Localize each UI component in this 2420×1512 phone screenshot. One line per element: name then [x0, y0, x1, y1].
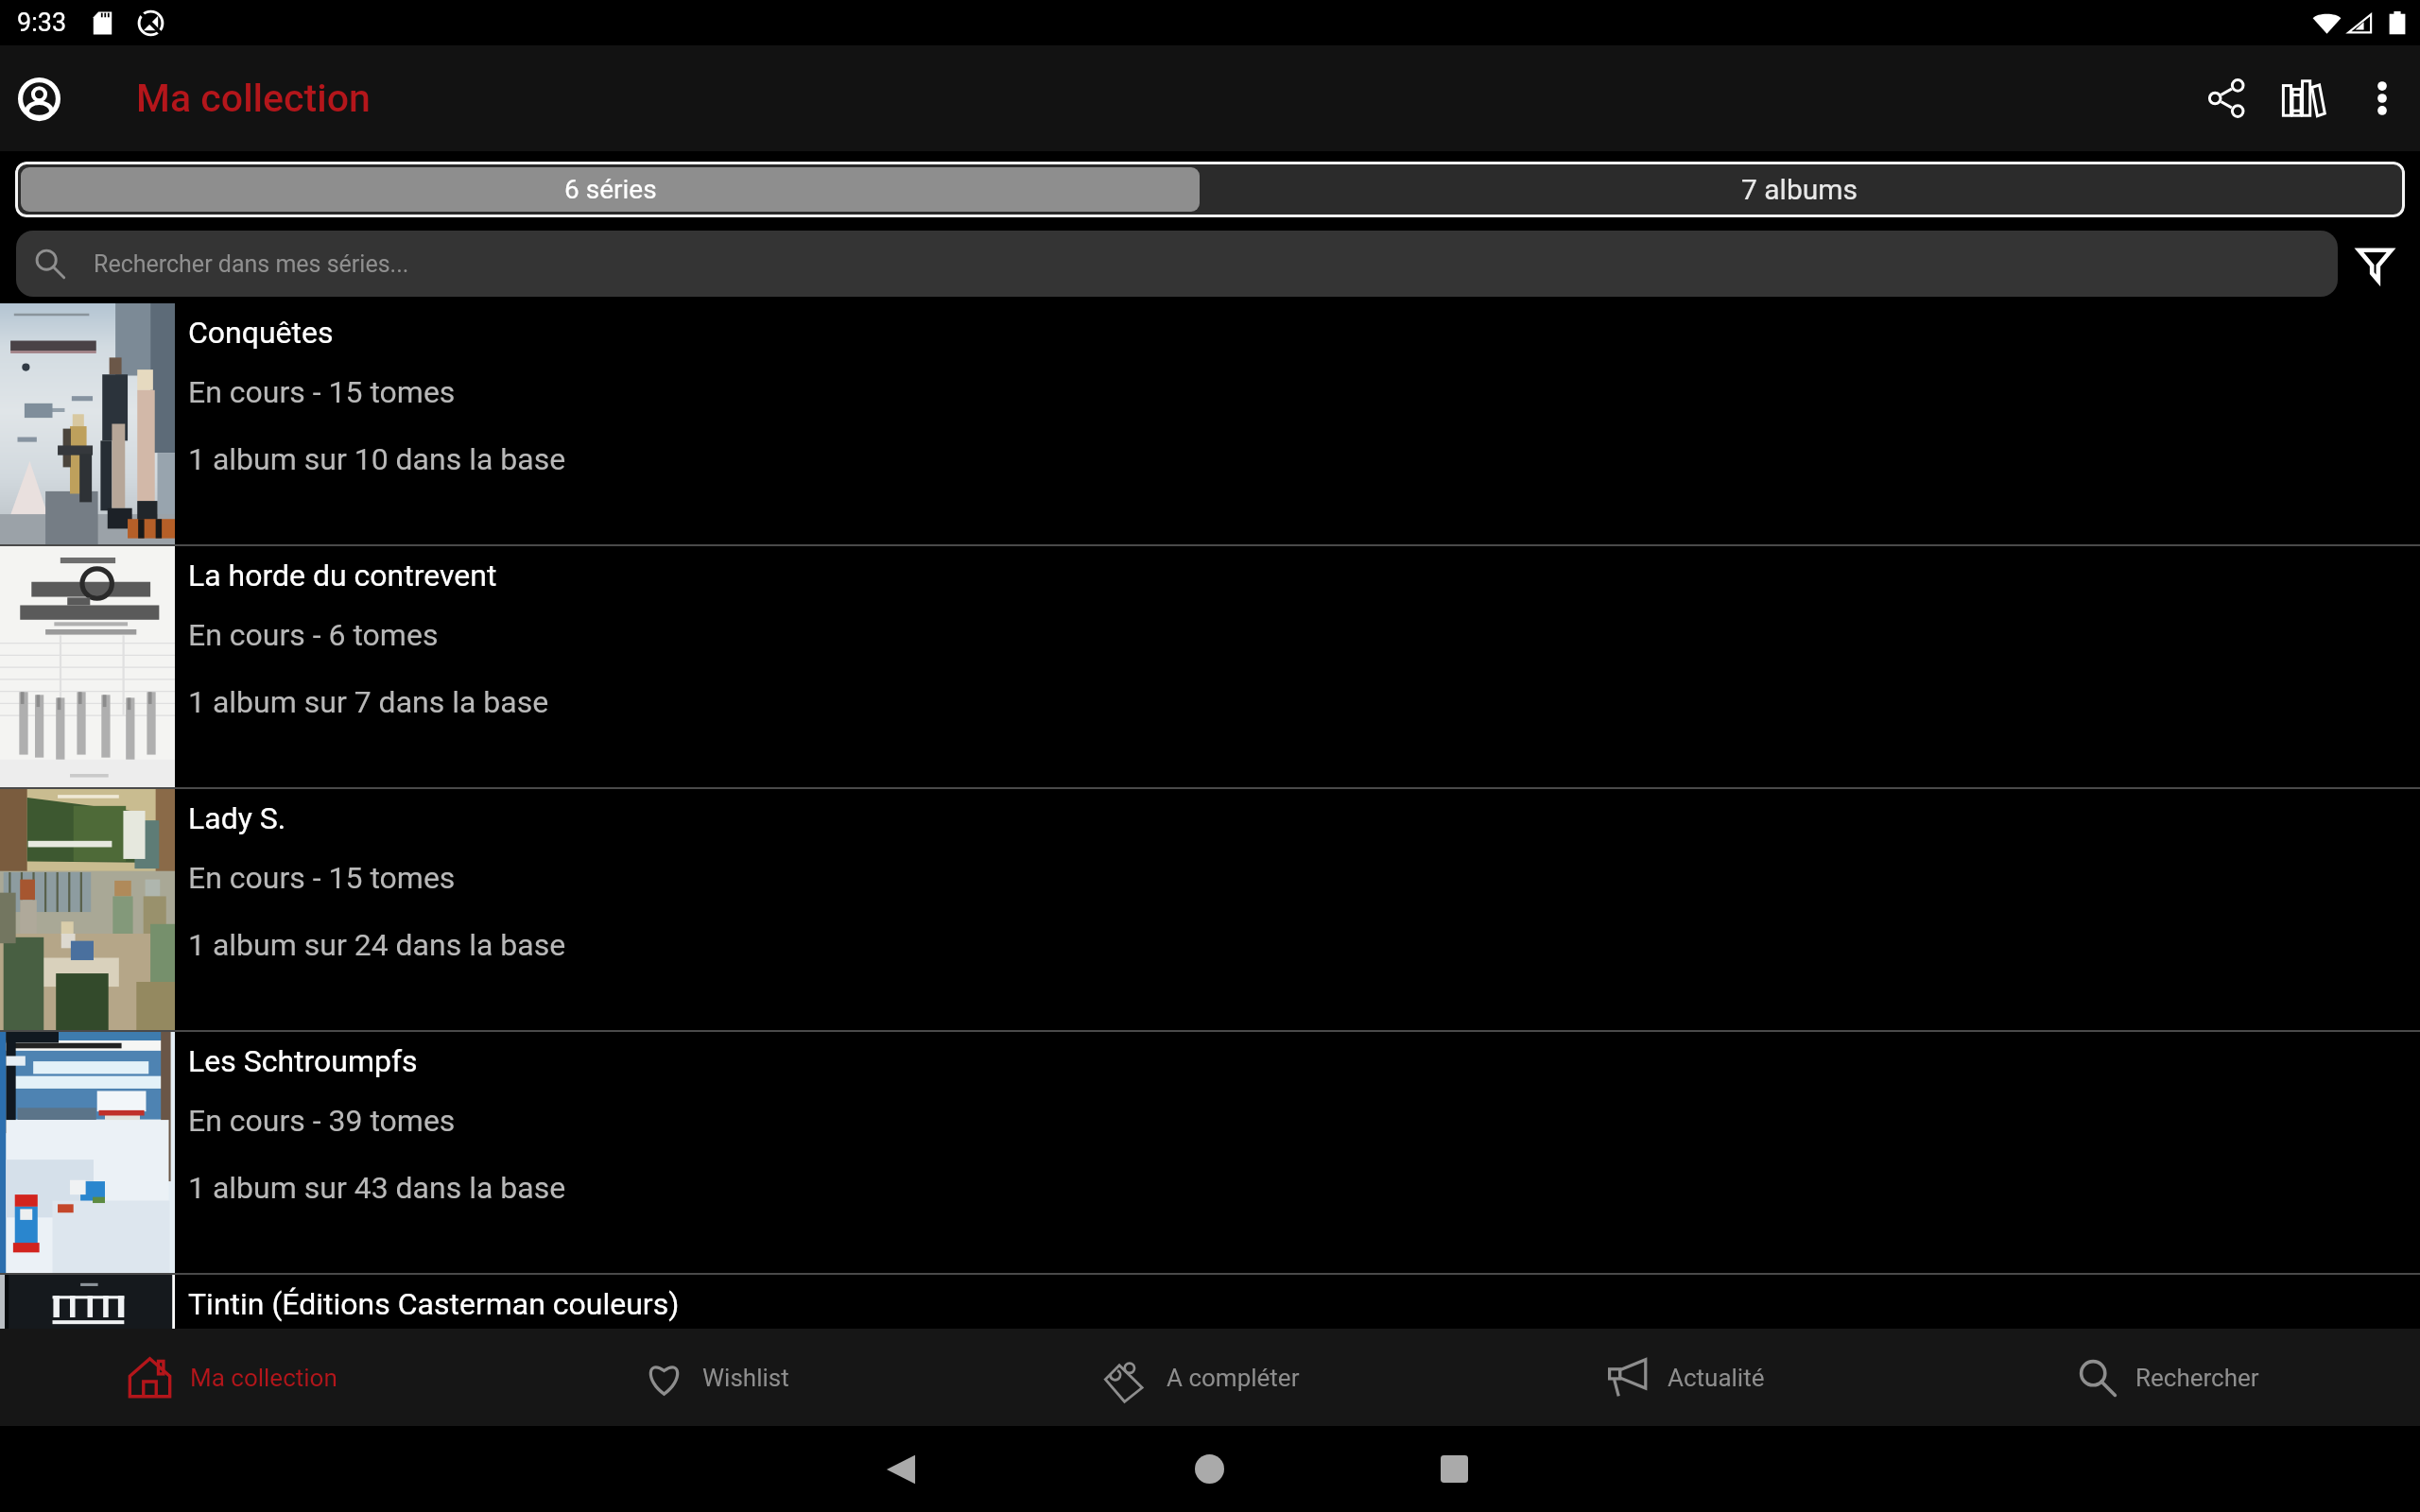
staticText: Actualité — [1668, 1364, 1765, 1392]
button[interactable]: 7 albums — [1200, 167, 2399, 212]
button[interactable]: Tintin (Éditions Casterman couleurs) — [0, 1275, 2420, 1329]
button[interactable]: Filter — [2338, 228, 2412, 300]
button[interactable]: Conquêtes — [0, 303, 2420, 544]
button[interactable]: Lady S. — [0, 789, 2420, 1030]
staticText: 9:33 — [17, 8, 67, 38]
staticText: 1 album sur 24 dans la base — [188, 927, 566, 963]
staticText: Conquêtes — [188, 315, 334, 351]
button[interactable]: Rechercher dans mes séries... — [16, 231, 2338, 297]
button[interactable]: Ma collection — [0, 1329, 484, 1426]
staticText: En cours - 39 tomes — [188, 1103, 456, 1139]
staticText: 6 séries — [564, 174, 657, 205]
button[interactable]: 6 séries — [21, 167, 1200, 212]
staticText: 1 album sur 10 dans la base — [188, 441, 566, 477]
button[interactable]: Wishlist — [484, 1329, 968, 1426]
staticText: Wishlist — [702, 1364, 789, 1392]
staticText: Lady S. — [188, 800, 286, 836]
button[interactable]: More options — [2348, 64, 2416, 132]
button[interactable]: Les Schtroumpfs — [0, 1032, 2420, 1273]
staticText: Les Schtroumpfs — [188, 1043, 418, 1079]
button[interactable]: Home — [1133, 1426, 1285, 1512]
staticText: En cours - 15 tomes — [188, 374, 456, 410]
button[interactable]: Recent apps — [1378, 1426, 1530, 1512]
button[interactable]: Share — [2192, 63, 2262, 133]
staticText: 7 albums — [1741, 173, 1858, 206]
button[interactable]: Rechercher — [1936, 1329, 2420, 1426]
staticText: 1 album sur 43 dans la base — [188, 1170, 566, 1206]
button[interactable]: Library — [2269, 63, 2339, 133]
staticText: 1 album sur 24 dans la base — [188, 1413, 566, 1449]
staticText: Rechercher dans mes séries... — [94, 250, 409, 278]
button[interactable]: Actualité — [1452, 1329, 1936, 1426]
staticText: La horde du contrevent — [188, 558, 497, 593]
staticText: 1 album sur 7 dans la base — [188, 684, 549, 720]
staticText: Tintin (Éditions Casterman couleurs) — [188, 1286, 680, 1322]
staticText: Ma collection — [136, 76, 371, 121]
staticText: A compléter — [1167, 1364, 1300, 1392]
staticText: En cours - 24 tomes — [188, 1346, 456, 1382]
staticText: En cours - 15 tomes — [188, 860, 456, 896]
staticText: Ma collection — [190, 1364, 337, 1392]
button[interactable]: A compléter — [968, 1329, 1452, 1426]
button[interactable]: La horde du contrevent — [0, 546, 2420, 787]
staticText: En cours - 6 tomes — [188, 617, 439, 653]
button[interactable]: Back — [825, 1426, 977, 1512]
staticText: Rechercher — [2135, 1364, 2259, 1392]
button[interactable]: Account — [12, 72, 65, 125]
